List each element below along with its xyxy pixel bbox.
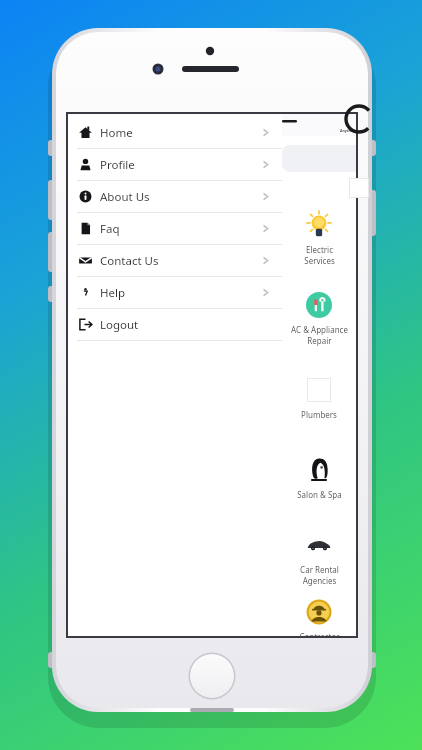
staticText: Car Rental Agencies [300, 564, 339, 586]
staticText: Home [100, 125, 133, 141]
staticText: Help [100, 285, 126, 301]
staticText: Anythin [340, 128, 355, 133]
button[interactable]: Electric Services [282, 198, 356, 278]
button[interactable]: Logout [68, 309, 282, 340]
staticText: Contractor [299, 631, 340, 636]
button[interactable]: Help [68, 277, 282, 308]
button[interactable]: Salon & Spa [282, 438, 356, 518]
staticText: AC & Appliance Repair [291, 324, 348, 346]
staticText: Faq [100, 221, 120, 237]
button[interactable]: Home [68, 117, 282, 148]
button[interactable]: AC & Appliance Repair [282, 278, 356, 358]
button[interactable]: Contact Us [68, 245, 282, 276]
staticText: Plumbers [301, 409, 337, 420]
staticText: Logout [100, 317, 139, 333]
staticText: Profile [100, 157, 135, 173]
staticText: Contact Us [100, 253, 159, 269]
staticText: About Us [100, 189, 150, 205]
button[interactable]: Plumbers [282, 358, 356, 438]
button[interactable]: Profile [68, 149, 282, 180]
button[interactable]: About Us [68, 181, 282, 212]
button[interactable]: Car Rental Agencies [282, 518, 356, 598]
button[interactable]: Contractor [282, 598, 356, 636]
button[interactable]: Faq [68, 213, 282, 244]
staticText: Electric Services [304, 244, 335, 266]
staticText: Salon & Spa [297, 489, 342, 500]
